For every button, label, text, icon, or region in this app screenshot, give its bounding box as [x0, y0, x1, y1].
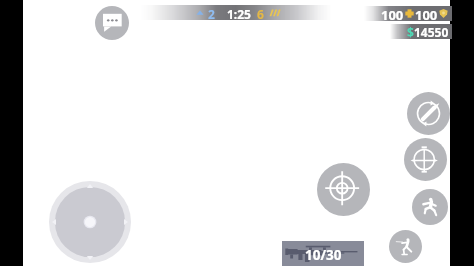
staticText: 14550: [414, 24, 449, 39]
button[interactable]: Ammo 10 of 30: [282, 241, 364, 266]
staticText: 2: [208, 6, 215, 21]
button[interactable]: Drive vehicle: [404, 138, 447, 181]
button[interactable]: Move joystick: [49, 181, 131, 263]
button[interactable]: Chat: [95, 6, 129, 40]
staticText: 10/30: [305, 246, 342, 264]
staticText: 100: [415, 6, 438, 21]
staticText: $: [407, 24, 414, 39]
button[interactable]: Swap weapon: [407, 92, 450, 135]
staticText: 100: [381, 6, 404, 21]
button[interactable]: Run: [412, 189, 448, 225]
staticText: 1:25: [227, 6, 251, 21]
button[interactable]: Fire: [317, 163, 370, 216]
button[interactable]: Crouch: [389, 230, 422, 263]
staticText: 6: [257, 6, 264, 21]
